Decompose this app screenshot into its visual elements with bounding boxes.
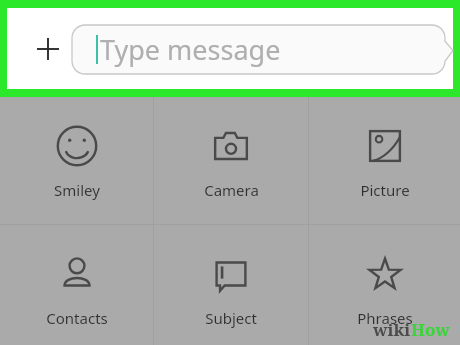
- button[interactable]: Smiley: [0, 97, 153, 224]
- button[interactable]: Phrases: [309, 225, 460, 345]
- button[interactable]: Contacts: [0, 225, 153, 345]
- staticText: How: [411, 318, 450, 341]
- staticText: Subject: [205, 308, 257, 328]
- button[interactable]: Add attachment: [27, 28, 69, 70]
- staticText: Picture: [360, 180, 410, 200]
- staticText: wiki: [373, 318, 411, 341]
- button[interactable]: [72, 25, 453, 74]
- staticText: Type message: [100, 31, 281, 68]
- staticText: Camera: [204, 180, 259, 200]
- staticText: Phrases: [357, 308, 413, 328]
- button[interactable]: Subject: [154, 225, 308, 345]
- button[interactable]: Picture: [309, 97, 460, 224]
- staticText: Smiley: [54, 180, 100, 200]
- staticText: Contacts: [46, 308, 108, 328]
- button[interactable]: Camera: [154, 97, 308, 224]
